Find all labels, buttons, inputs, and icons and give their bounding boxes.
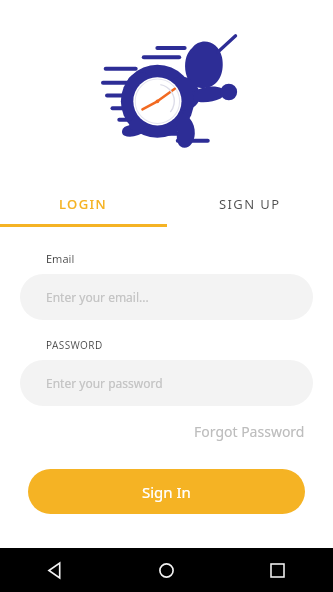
staticText: Forgot Password xyxy=(194,422,305,441)
staticText: LOGIN xyxy=(59,195,108,213)
staticText: Enter your email... xyxy=(46,289,149,305)
button[interactable]: LOGIN xyxy=(0,180,166,227)
button[interactable]: Recent apps xyxy=(222,548,333,592)
staticText: Email xyxy=(46,251,75,266)
button[interactable]: Back xyxy=(0,548,111,592)
button[interactable]: Sign In xyxy=(28,469,305,514)
button[interactable]: SIGN UP xyxy=(166,180,333,227)
button[interactable]: Home xyxy=(111,548,222,592)
staticText: SIGN UP xyxy=(219,195,281,213)
staticText: Sign In xyxy=(142,482,191,502)
button[interactable]: Enter your password xyxy=(20,360,313,406)
button[interactable]: Enter your email... xyxy=(20,274,313,320)
staticText: PASSWORD xyxy=(46,338,103,352)
staticText: Enter your password xyxy=(46,375,163,391)
button[interactable]: Forgot Password xyxy=(192,420,307,443)
